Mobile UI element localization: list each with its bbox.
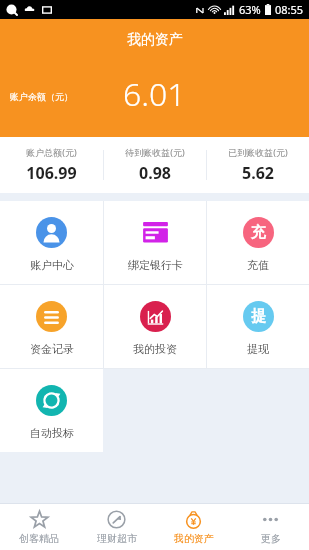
- button[interactable]: 自动投标: [0, 369, 103, 452]
- other: 账户中心: [36, 217, 67, 248]
- staticText: 理财超市: [97, 532, 137, 545]
- button[interactable]: 提: [207, 285, 309, 368]
- staticText: 6.01: [123, 72, 186, 116]
- staticText: 更多: [261, 532, 281, 545]
- staticText: 我的资产: [174, 532, 214, 545]
- button[interactable]: 创客精品: [0, 504, 78, 550]
- other: 自动投标: [36, 385, 67, 416]
- staticText: 账户余额（元）: [10, 91, 73, 102]
- other: 提: [243, 301, 274, 332]
- other: 绑定银行卡: [140, 217, 171, 248]
- staticText: 08:55: [275, 2, 304, 17]
- staticText: 自动投标: [30, 426, 74, 440]
- button[interactable]: 账户中心: [0, 201, 103, 284]
- staticText: 我的资产: [127, 31, 183, 49]
- other: 我的投资: [140, 301, 171, 332]
- staticText: 账户中心: [30, 258, 74, 272]
- staticText: 创客精品: [19, 532, 59, 545]
- staticText: 绑定银行卡: [128, 258, 183, 272]
- button[interactable]: 充: [207, 201, 309, 284]
- staticText: 资金记录: [30, 342, 74, 356]
- staticText: 我的投资: [133, 342, 177, 356]
- staticText: 63%: [239, 2, 261, 17]
- button[interactable]: 更多: [232, 504, 309, 550]
- staticText: 已到账收益(元): [228, 146, 288, 158]
- staticText: 0.98: [139, 162, 171, 184]
- button[interactable]: 理财超市: [78, 504, 155, 550]
- staticText: 提: [251, 307, 266, 326]
- button[interactable]: 绑定银行卡: [104, 201, 206, 284]
- button[interactable]: 已到账收益(元): [207, 146, 309, 184]
- button[interactable]: 我的投资: [104, 285, 206, 368]
- staticText: 账户总额(元): [26, 146, 77, 158]
- button[interactable]: 待到账收益(元): [104, 146, 206, 184]
- staticText: 提现: [247, 342, 269, 356]
- other: 充: [243, 217, 274, 248]
- staticText: 106.99: [26, 162, 77, 184]
- staticText: 待到账收益(元): [125, 146, 185, 158]
- other: 资金记录: [36, 301, 67, 332]
- staticText: 充值: [247, 258, 269, 272]
- button[interactable]: 账户总额(元): [0, 146, 103, 184]
- button[interactable]: 我的资产: [155, 504, 232, 550]
- staticText: 充: [251, 223, 266, 242]
- button[interactable]: 资金记录: [0, 285, 103, 368]
- staticText: 5.62: [242, 162, 274, 184]
